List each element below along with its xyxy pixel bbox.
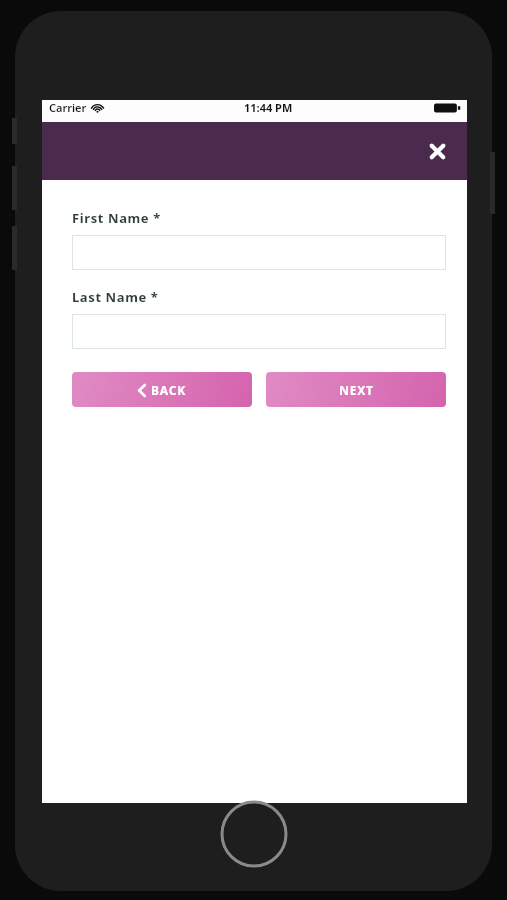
staticText: Carrier [49,100,87,115]
button[interactable]: Home [220,800,288,868]
staticText: BACK [151,382,186,398]
button[interactable] [72,314,446,349]
button[interactable]: BACK [72,372,252,407]
button[interactable]: Close [417,131,457,171]
staticText: First Name * [72,209,161,227]
staticText: Last Name * [72,288,159,306]
staticText: NEXT [339,382,374,398]
staticText: 11:44 PM [244,100,293,115]
button[interactable] [72,235,446,270]
button[interactable]: NEXT [266,372,446,407]
